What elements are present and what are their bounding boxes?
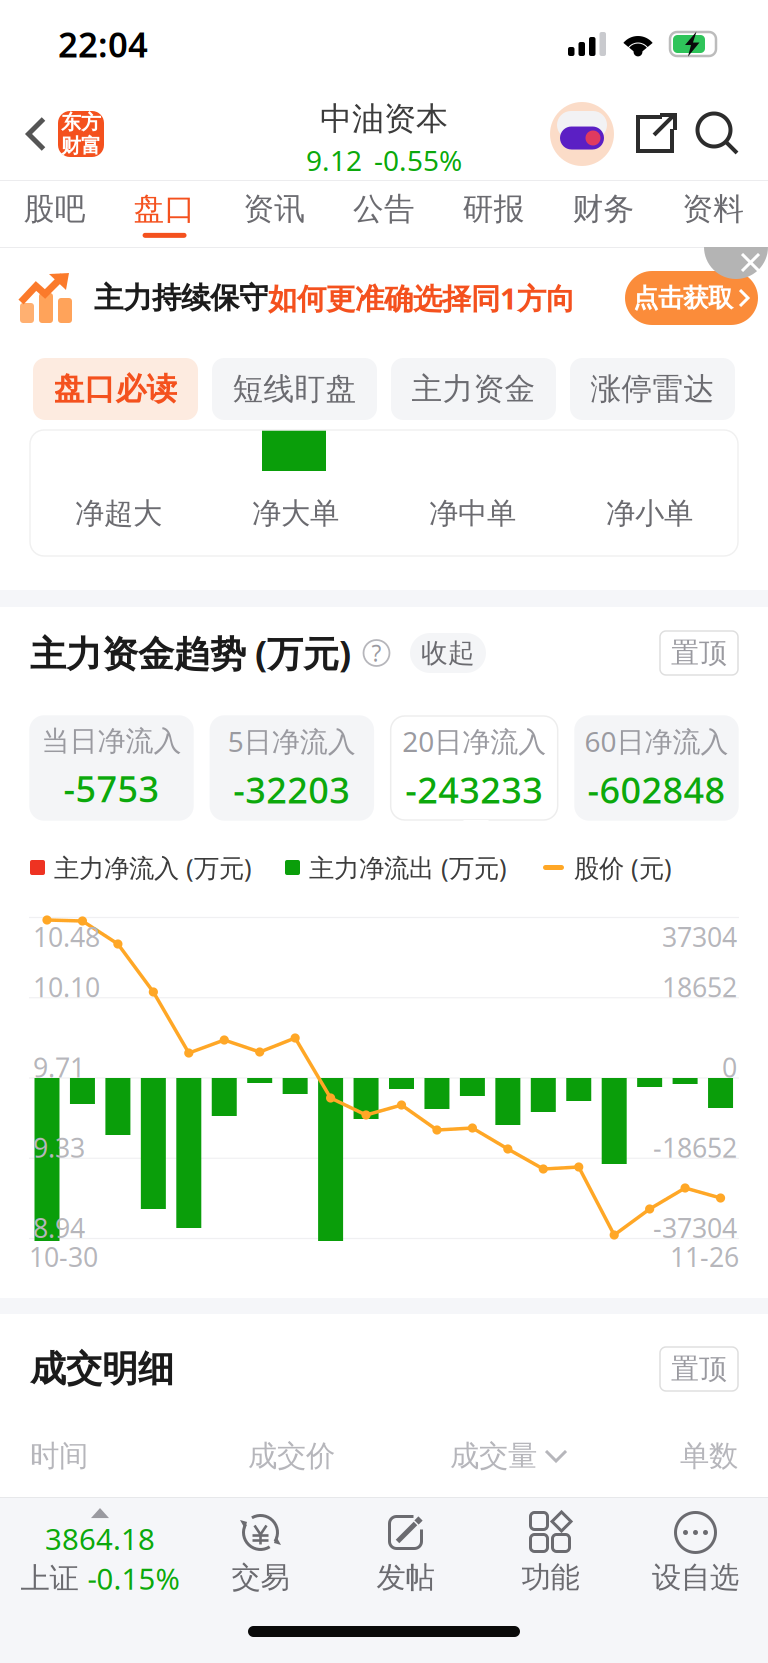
button[interactable]: 交易 [188, 1499, 333, 1607]
button[interactable]: 功能 [478, 1499, 623, 1607]
button[interactable]: 涨停雷达 [570, 358, 735, 420]
staticText: 研报 [463, 190, 525, 228]
staticText: 主力净流入 (万元) [54, 851, 252, 884]
staticText: -243233 [405, 766, 543, 813]
button[interactable]: 3864.18 [0, 1499, 188, 1607]
staticText: 18652 [662, 969, 737, 1005]
button[interactable]: Search [694, 110, 742, 158]
staticText: 公告 [353, 190, 415, 228]
staticText: 10-30 [29, 1239, 98, 1274]
staticText: 股价 (元) [574, 851, 672, 884]
staticText: -5753 [63, 764, 159, 812]
staticText: 股吧 [24, 190, 86, 228]
staticText: 发帖 [376, 1559, 434, 1595]
staticText: 上证 [20, 1560, 78, 1596]
staticText: 点击获取 [633, 282, 733, 313]
staticText: -18652 [653, 1130, 737, 1165]
button[interactable]: 当日净流入 [30, 716, 193, 820]
button[interactable]: Back [14, 98, 58, 170]
staticText: 涨停雷达 [590, 370, 714, 408]
staticText: 9.33 [33, 1130, 85, 1165]
staticText: -0.55% [374, 142, 462, 179]
button[interactable]: 财务 [549, 181, 658, 247]
staticText: 主力持续保守 [94, 280, 268, 316]
staticText: 22:04 [58, 21, 148, 67]
staticText: 置顶 [671, 636, 727, 670]
staticText: 成交量 [450, 1438, 537, 1474]
button[interactable]: 研报 [439, 181, 549, 247]
staticText: -32203 [233, 766, 350, 813]
staticText: 9.12 [306, 142, 362, 179]
staticText: 成交价 [248, 1438, 335, 1474]
staticText: ? [371, 638, 381, 668]
staticText: 20日净流入 [402, 722, 546, 760]
staticText: 时间 [30, 1438, 88, 1474]
staticText: 盘口 [134, 190, 196, 228]
staticText: 37304 [662, 919, 737, 954]
staticText: 中油资本 [320, 99, 448, 139]
staticText: -602848 [587, 766, 725, 813]
button[interactable]: AI assistant [550, 102, 614, 166]
button[interactable]: 20日净流入 [391, 716, 558, 820]
staticText: 资料 [682, 190, 744, 228]
staticText: 成交明细 [30, 1347, 174, 1391]
button[interactable]: 盘口必读 [33, 358, 198, 420]
staticText: 如何更准确选择同1方向 [268, 278, 575, 317]
staticText: 9.71 [33, 1049, 85, 1085]
staticText: 资讯 [243, 190, 305, 228]
staticText: 盘口必读 [53, 370, 177, 408]
button[interactable]: 设自选 [623, 1499, 768, 1607]
staticText: 5日净流入 [228, 722, 356, 760]
button[interactable]: 5日净流入 [210, 716, 373, 820]
staticText: 交易 [231, 1559, 289, 1595]
staticText: 当日净流入 [41, 724, 181, 758]
button[interactable]: 短线盯盘 [212, 358, 377, 420]
button[interactable]: 发帖 [333, 1499, 478, 1607]
staticText: 10.48 [33, 919, 100, 954]
staticText: 置顶 [671, 1352, 727, 1386]
staticText: 财富 [61, 133, 101, 158]
staticText: -37304 [653, 1210, 737, 1245]
button[interactable]: 置顶 [660, 1347, 738, 1391]
staticText: 净大单 [252, 495, 339, 531]
button[interactable]: 公告 [329, 181, 439, 247]
staticText: 0 [722, 1049, 737, 1085]
button[interactable]: 主力持续保守 [0, 248, 768, 348]
staticText: 短线盯盘 [232, 370, 356, 408]
button[interactable]: 盘口 [110, 181, 219, 247]
button[interactable]: 资料 [658, 181, 768, 247]
button[interactable]: East Money home [58, 111, 104, 157]
button[interactable]: Share [632, 109, 680, 159]
staticText: 功能 [521, 1559, 579, 1595]
staticText: 10.10 [33, 969, 100, 1005]
button[interactable]: 主力资金 [391, 358, 556, 420]
staticText: 净小单 [606, 495, 693, 531]
staticText: 主力净流出 (万元) [309, 851, 507, 884]
button[interactable]: Close ad [736, 247, 768, 279]
staticText: 11-26 [670, 1239, 739, 1274]
button[interactable]: 资讯 [219, 181, 329, 247]
staticText: 主力资金趋势 (万元) [30, 629, 351, 677]
staticText: 8.94 [33, 1210, 85, 1245]
staticText: 净中单 [429, 495, 516, 531]
staticText: 设自选 [652, 1559, 739, 1595]
button[interactable]: 股吧 [0, 181, 110, 247]
staticText: 收起 [421, 637, 475, 669]
staticText: 60日净流入 [584, 722, 728, 760]
staticText: -0.15% [87, 1559, 179, 1598]
staticText: 东方 [61, 110, 101, 134]
button[interactable]: 60日净流入 [575, 716, 738, 820]
staticText: 3864.18 [45, 1519, 155, 1558]
button[interactable]: 置顶 [660, 631, 738, 675]
staticText: 主力资金 [411, 370, 535, 408]
button[interactable]: 收起 [410, 633, 486, 673]
staticText: 净超大 [75, 495, 162, 531]
staticText: 单数 [680, 1438, 738, 1474]
staticText: 财务 [572, 190, 634, 228]
